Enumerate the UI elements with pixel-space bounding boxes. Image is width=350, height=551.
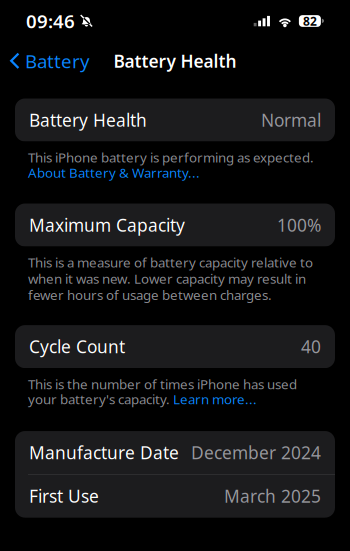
staticText: Battery Health <box>29 108 147 131</box>
staticText: your battery's capacity. <box>28 390 173 408</box>
staticText: Cycle Count <box>29 335 125 358</box>
button[interactable]: Manufacture Date <box>15 431 335 474</box>
staticText: Battery <box>25 49 90 73</box>
staticText: Manufacture Date <box>29 441 179 464</box>
button[interactable]: Cycle Count <box>15 325 335 368</box>
staticText: First Use <box>29 485 99 508</box>
staticText: 40 <box>301 335 321 358</box>
staticText: This iPhone battery is performing as exp… <box>28 148 314 166</box>
button[interactable]: Learn more... <box>173 390 257 408</box>
staticText: Maximum Capacity <box>29 213 185 236</box>
staticText: About Battery & Warranty... <box>28 164 200 181</box>
staticText: 09:46 <box>26 9 75 33</box>
button[interactable]: Maximum Capacity <box>15 203 335 246</box>
button[interactable]: Battery <box>0 42 98 80</box>
staticText: December 2024 <box>191 441 321 464</box>
staticText: Battery Health <box>113 49 236 72</box>
button[interactable]: About Battery & Warranty... <box>28 164 200 181</box>
staticText: Learn more... <box>173 390 257 408</box>
staticText: Normal <box>261 108 321 131</box>
button[interactable]: Battery Health <box>15 98 335 141</box>
staticText: March 2025 <box>224 485 321 508</box>
button[interactable]: First Use <box>15 475 335 518</box>
staticText: 100% <box>277 213 321 236</box>
staticText: This is the number of times iPhone has u… <box>28 375 297 393</box>
staticText: 82 <box>303 13 317 29</box>
staticText: This is a measure of battery capacity re… <box>28 253 313 304</box>
